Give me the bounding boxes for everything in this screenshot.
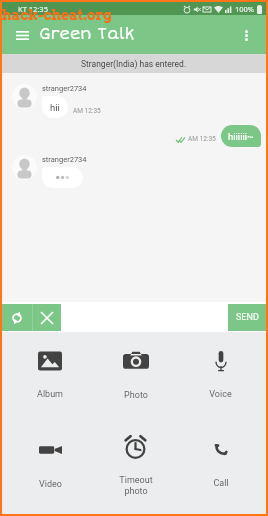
staticText: Voice (209, 389, 232, 400)
staticText: hii (50, 102, 60, 113)
staticText: Album (37, 389, 63, 400)
staticText: Video (39, 479, 62, 490)
staticText: hack-cheat.org (2, 7, 112, 24)
staticText: AM 12:35 (188, 135, 216, 143)
staticText: stranger2734 (42, 84, 87, 93)
staticText: Call (213, 478, 229, 489)
button[interactable]: Photo (93, 332, 178, 423)
staticText: hiiiiii~ (228, 131, 254, 142)
button[interactable]: SEND (228, 304, 266, 331)
staticText: Stranger(India) has entered. (81, 59, 187, 69)
button[interactable]: Call (178, 423, 263, 514)
staticText: 100% (235, 4, 255, 14)
staticText: KT 12:35 (18, 4, 48, 14)
button[interactable]: Timeout photo (93, 423, 178, 514)
button[interactable]: Album (7, 332, 93, 423)
staticText: Photo (124, 390, 148, 401)
staticText: Timeout photo (119, 475, 153, 497)
staticText: stranger2734 (42, 155, 87, 164)
button[interactable]: Stop chat (33, 304, 61, 331)
staticText: AM 12:35 (73, 107, 101, 115)
staticText: Green Talk (39, 24, 135, 44)
staticText: SEND (236, 312, 259, 323)
button[interactable]: More options (233, 22, 259, 48)
button[interactable]: Voice (178, 332, 263, 423)
button[interactable]: Find new partner (2, 304, 32, 331)
button[interactable]: Video (7, 423, 93, 514)
button[interactable]: Open navigation menu (9, 22, 35, 48)
